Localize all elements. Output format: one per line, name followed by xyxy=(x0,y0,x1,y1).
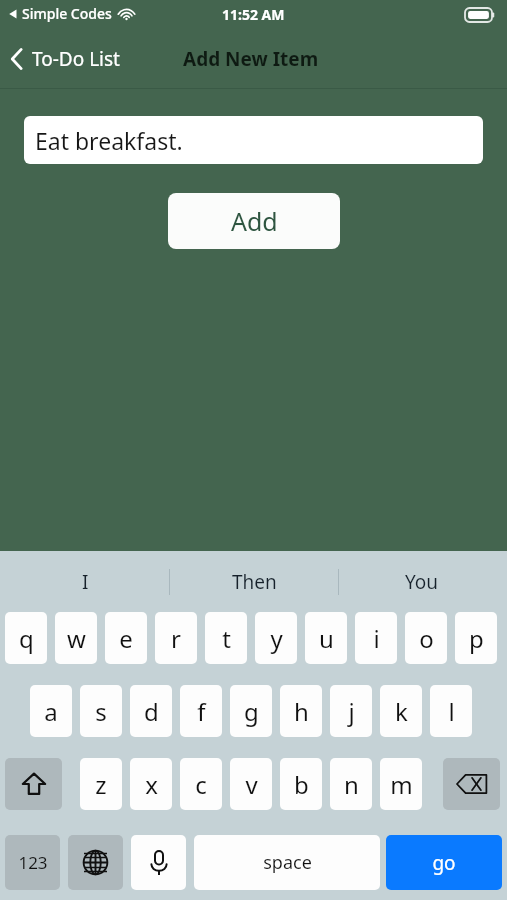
button[interactable]: b xyxy=(280,758,322,810)
staticText: Add New Item xyxy=(183,46,319,72)
button[interactable]: Then xyxy=(174,561,334,603)
staticText: 123 xyxy=(18,851,48,874)
button[interactable]: v xyxy=(230,758,272,810)
button[interactable]: j xyxy=(330,685,372,737)
staticText: p xyxy=(469,622,484,655)
button[interactable]: u xyxy=(305,612,347,664)
button[interactable]: Change keyboard xyxy=(68,835,123,890)
staticText: To-Do List xyxy=(32,46,120,72)
staticText: Add xyxy=(231,204,278,238)
staticText: go xyxy=(432,850,456,876)
staticText: a xyxy=(44,695,58,728)
button[interactable]: z xyxy=(80,758,122,810)
button[interactable]: f xyxy=(180,685,222,737)
staticText: u xyxy=(319,622,334,655)
staticText: d xyxy=(144,695,159,728)
staticText: space xyxy=(263,850,312,875)
button[interactable]: Backspace xyxy=(443,758,500,810)
staticText: f xyxy=(197,695,206,728)
staticText: Then xyxy=(232,569,277,595)
staticText: i xyxy=(373,622,380,655)
button[interactable]: l xyxy=(430,685,472,737)
button[interactable]: m xyxy=(380,758,422,810)
button[interactable]: n xyxy=(330,758,372,810)
button[interactable]: Add xyxy=(168,193,340,249)
staticText: k xyxy=(395,695,408,728)
button[interactable]: Shift xyxy=(5,758,62,810)
button[interactable]: To-Do List xyxy=(10,42,120,76)
button[interactable]: space xyxy=(194,835,380,890)
staticText: s xyxy=(95,695,107,728)
button[interactable]: c xyxy=(180,758,222,810)
staticText: c xyxy=(195,768,207,801)
staticText: x xyxy=(145,768,158,801)
button[interactable]: h xyxy=(280,685,322,737)
button[interactable]: Eat breakfast. xyxy=(24,116,483,164)
staticText: y xyxy=(270,622,283,655)
button[interactable]: s xyxy=(80,685,122,737)
staticText: j xyxy=(348,695,355,728)
staticText: n xyxy=(344,768,359,801)
button[interactable]: k xyxy=(380,685,422,737)
button[interactable]: w xyxy=(55,612,97,664)
staticText: w xyxy=(67,622,86,655)
staticText: I xyxy=(82,569,89,595)
staticText: v xyxy=(245,768,258,801)
button[interactable]: You xyxy=(342,561,502,603)
staticText: r xyxy=(171,622,181,655)
button[interactable]: y xyxy=(255,612,297,664)
staticText: o xyxy=(419,622,434,655)
button[interactable]: q xyxy=(5,612,47,664)
staticText: q xyxy=(19,622,34,655)
button[interactable]: o xyxy=(405,612,447,664)
staticText: t xyxy=(222,622,231,655)
staticText: Eat breakfast. xyxy=(35,125,183,156)
button[interactable]: t xyxy=(205,612,247,664)
button[interactable]: 123 xyxy=(5,835,60,890)
button[interactable]: I xyxy=(5,561,165,603)
button[interactable]: p xyxy=(455,612,497,664)
staticText: m xyxy=(390,768,413,801)
staticText: z xyxy=(95,768,107,801)
staticText: h xyxy=(294,695,309,728)
button[interactable]: i xyxy=(355,612,397,664)
staticText: You xyxy=(405,569,439,595)
button[interactable]: e xyxy=(105,612,147,664)
button[interactable]: a xyxy=(30,685,72,737)
button[interactable]: g xyxy=(230,685,272,737)
button[interactable]: x xyxy=(130,758,172,810)
button[interactable]: d xyxy=(130,685,172,737)
button[interactable]: r xyxy=(155,612,197,664)
button[interactable]: go xyxy=(386,835,502,890)
button[interactable]: Dictate xyxy=(131,835,186,890)
staticText: e xyxy=(119,622,133,655)
staticText: Simple Codes xyxy=(22,4,112,23)
staticText: 11:52 AM xyxy=(222,5,285,24)
staticText: g xyxy=(244,695,259,728)
staticText: b xyxy=(294,768,309,801)
staticText: l xyxy=(448,695,455,728)
